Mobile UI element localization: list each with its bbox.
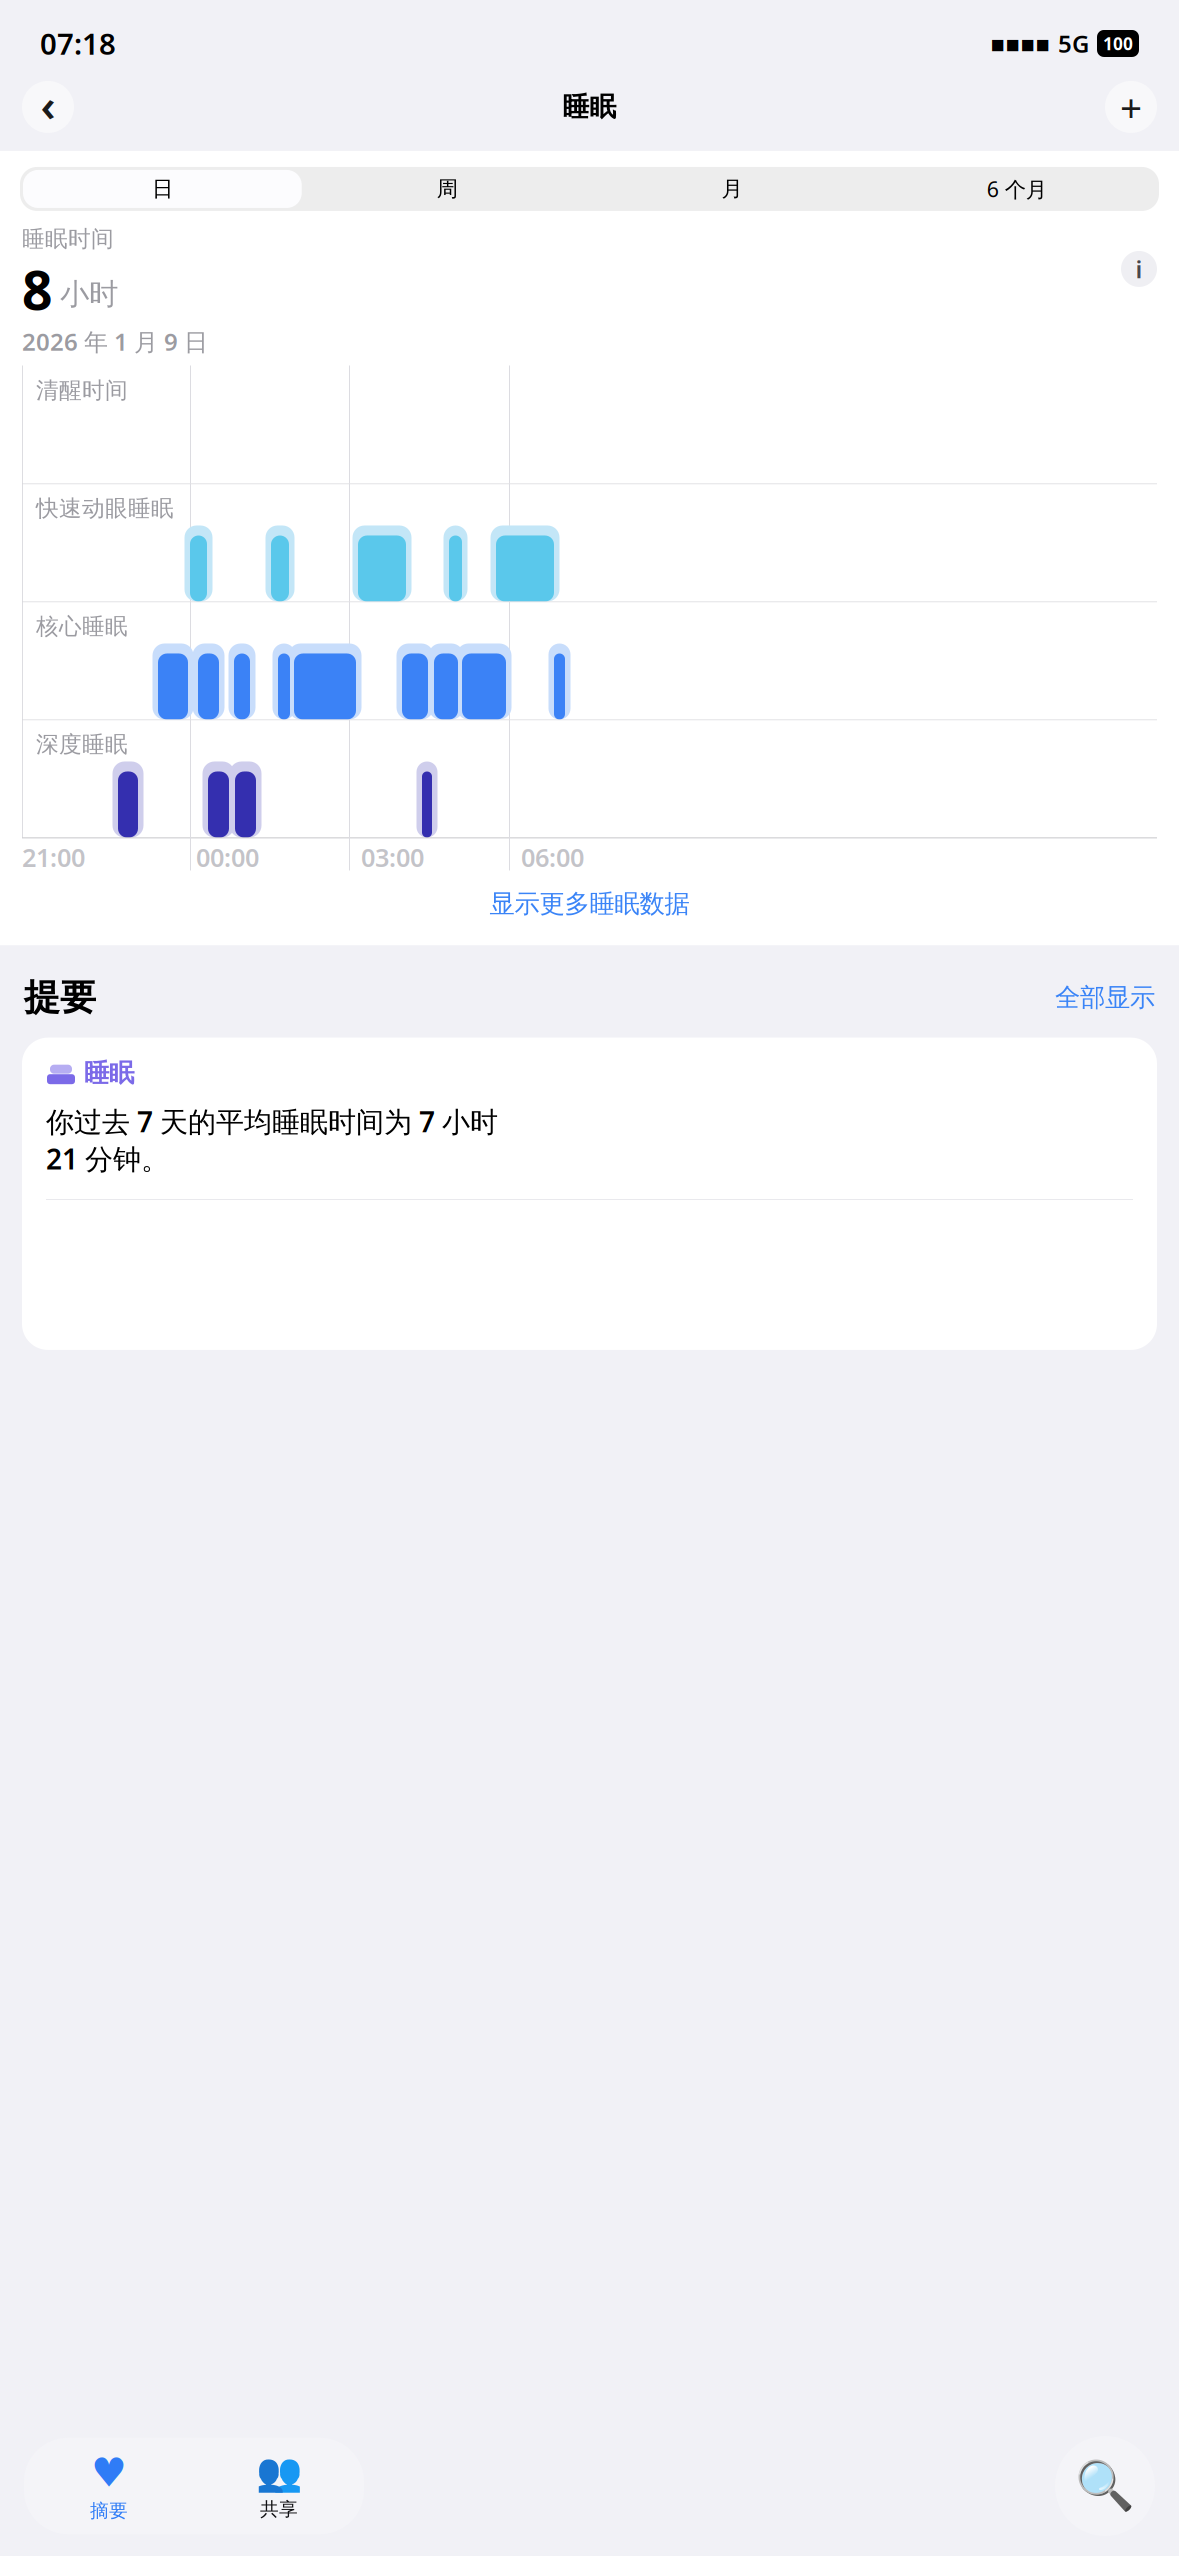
staticText: 🔍 (1075, 2459, 1135, 2513)
staticText: 月 (721, 176, 742, 202)
button[interactable]: 周 (305, 167, 590, 211)
staticText: 06:00 (521, 840, 584, 874)
staticText: 快速动眼睡眠 (36, 494, 174, 522)
staticText: + (1120, 81, 1142, 133)
staticText: 深度睡眠 (36, 730, 128, 758)
button[interactable]: 全部显示 (1055, 982, 1155, 1013)
staticText: 8 (22, 254, 53, 325)
staticText: ♥ (91, 2450, 127, 2495)
staticText: 摘要 (90, 2499, 128, 2522)
staticText: 2026 年 1 月 9 日 (22, 326, 208, 357)
staticText: ‹ (40, 75, 55, 134)
button[interactable]: 返回 (22, 81, 74, 133)
staticText: 21:00 (22, 840, 85, 874)
staticText: 00:00 (196, 840, 259, 874)
button[interactable]: ♥ (24, 2438, 194, 2534)
button[interactable]: 6 个月 (874, 167, 1159, 211)
button[interactable]: 日 (20, 167, 305, 211)
staticText: i (1135, 253, 1142, 285)
staticText: 5G (1058, 27, 1089, 59)
staticText: 共享 (260, 2498, 298, 2521)
button[interactable]: 月 (589, 167, 874, 211)
staticText: 03:00 (361, 840, 424, 874)
staticText: 显示更多睡眠数据 (489, 888, 689, 919)
staticText: 睡眠 (84, 1058, 134, 1089)
button[interactable]: 显示更多睡眠数据 (0, 872, 1179, 935)
staticText: 清醒时间 (36, 376, 128, 404)
staticText: 👥 (256, 2451, 302, 2494)
button[interactable]: 👥 (194, 2439, 364, 2533)
staticText: 全部显示 (1055, 982, 1155, 1013)
staticText: 核心睡眠 (36, 612, 128, 640)
staticText: 小时 (60, 276, 118, 312)
staticText: ▪▪▪▪ (990, 31, 1050, 56)
staticText: 睡眠 (562, 91, 616, 123)
staticText: 07:18 (40, 24, 116, 63)
staticText: 100 (1103, 32, 1133, 55)
staticText: 6 个月 (987, 175, 1047, 203)
button[interactable]: 搜索 (1055, 2436, 1155, 2536)
staticText: 周 (437, 176, 458, 202)
staticText: 你过去 7 天的平均睡眠时间为 7 小时 21 分钟。 (46, 1103, 498, 1177)
button[interactable]: 关于睡眠时间 (1121, 251, 1157, 287)
button[interactable]: 添加数据 (1105, 81, 1157, 133)
staticText: 睡眠时间 (22, 225, 114, 253)
staticText: 日 (152, 176, 173, 202)
staticText: 提要 (24, 975, 96, 1020)
